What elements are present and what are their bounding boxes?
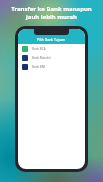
- staticText: Transfer ke Bank manapun: [11, 5, 92, 13]
- button[interactable]: Bank BCA: [18, 44, 85, 53]
- staticText: Bank BNI: [32, 65, 46, 69]
- staticText: Pilih Bank Tujuan: [37, 37, 66, 42]
- staticText: jauh lebih murah: [26, 13, 77, 21]
- button[interactable]: Bank BNI: [18, 62, 85, 71]
- staticText: Bank Mandiri: [32, 56, 51, 60]
- button[interactable]: Bank Mandiri: [18, 53, 85, 62]
- staticText: Bank BCA: [32, 47, 46, 51]
